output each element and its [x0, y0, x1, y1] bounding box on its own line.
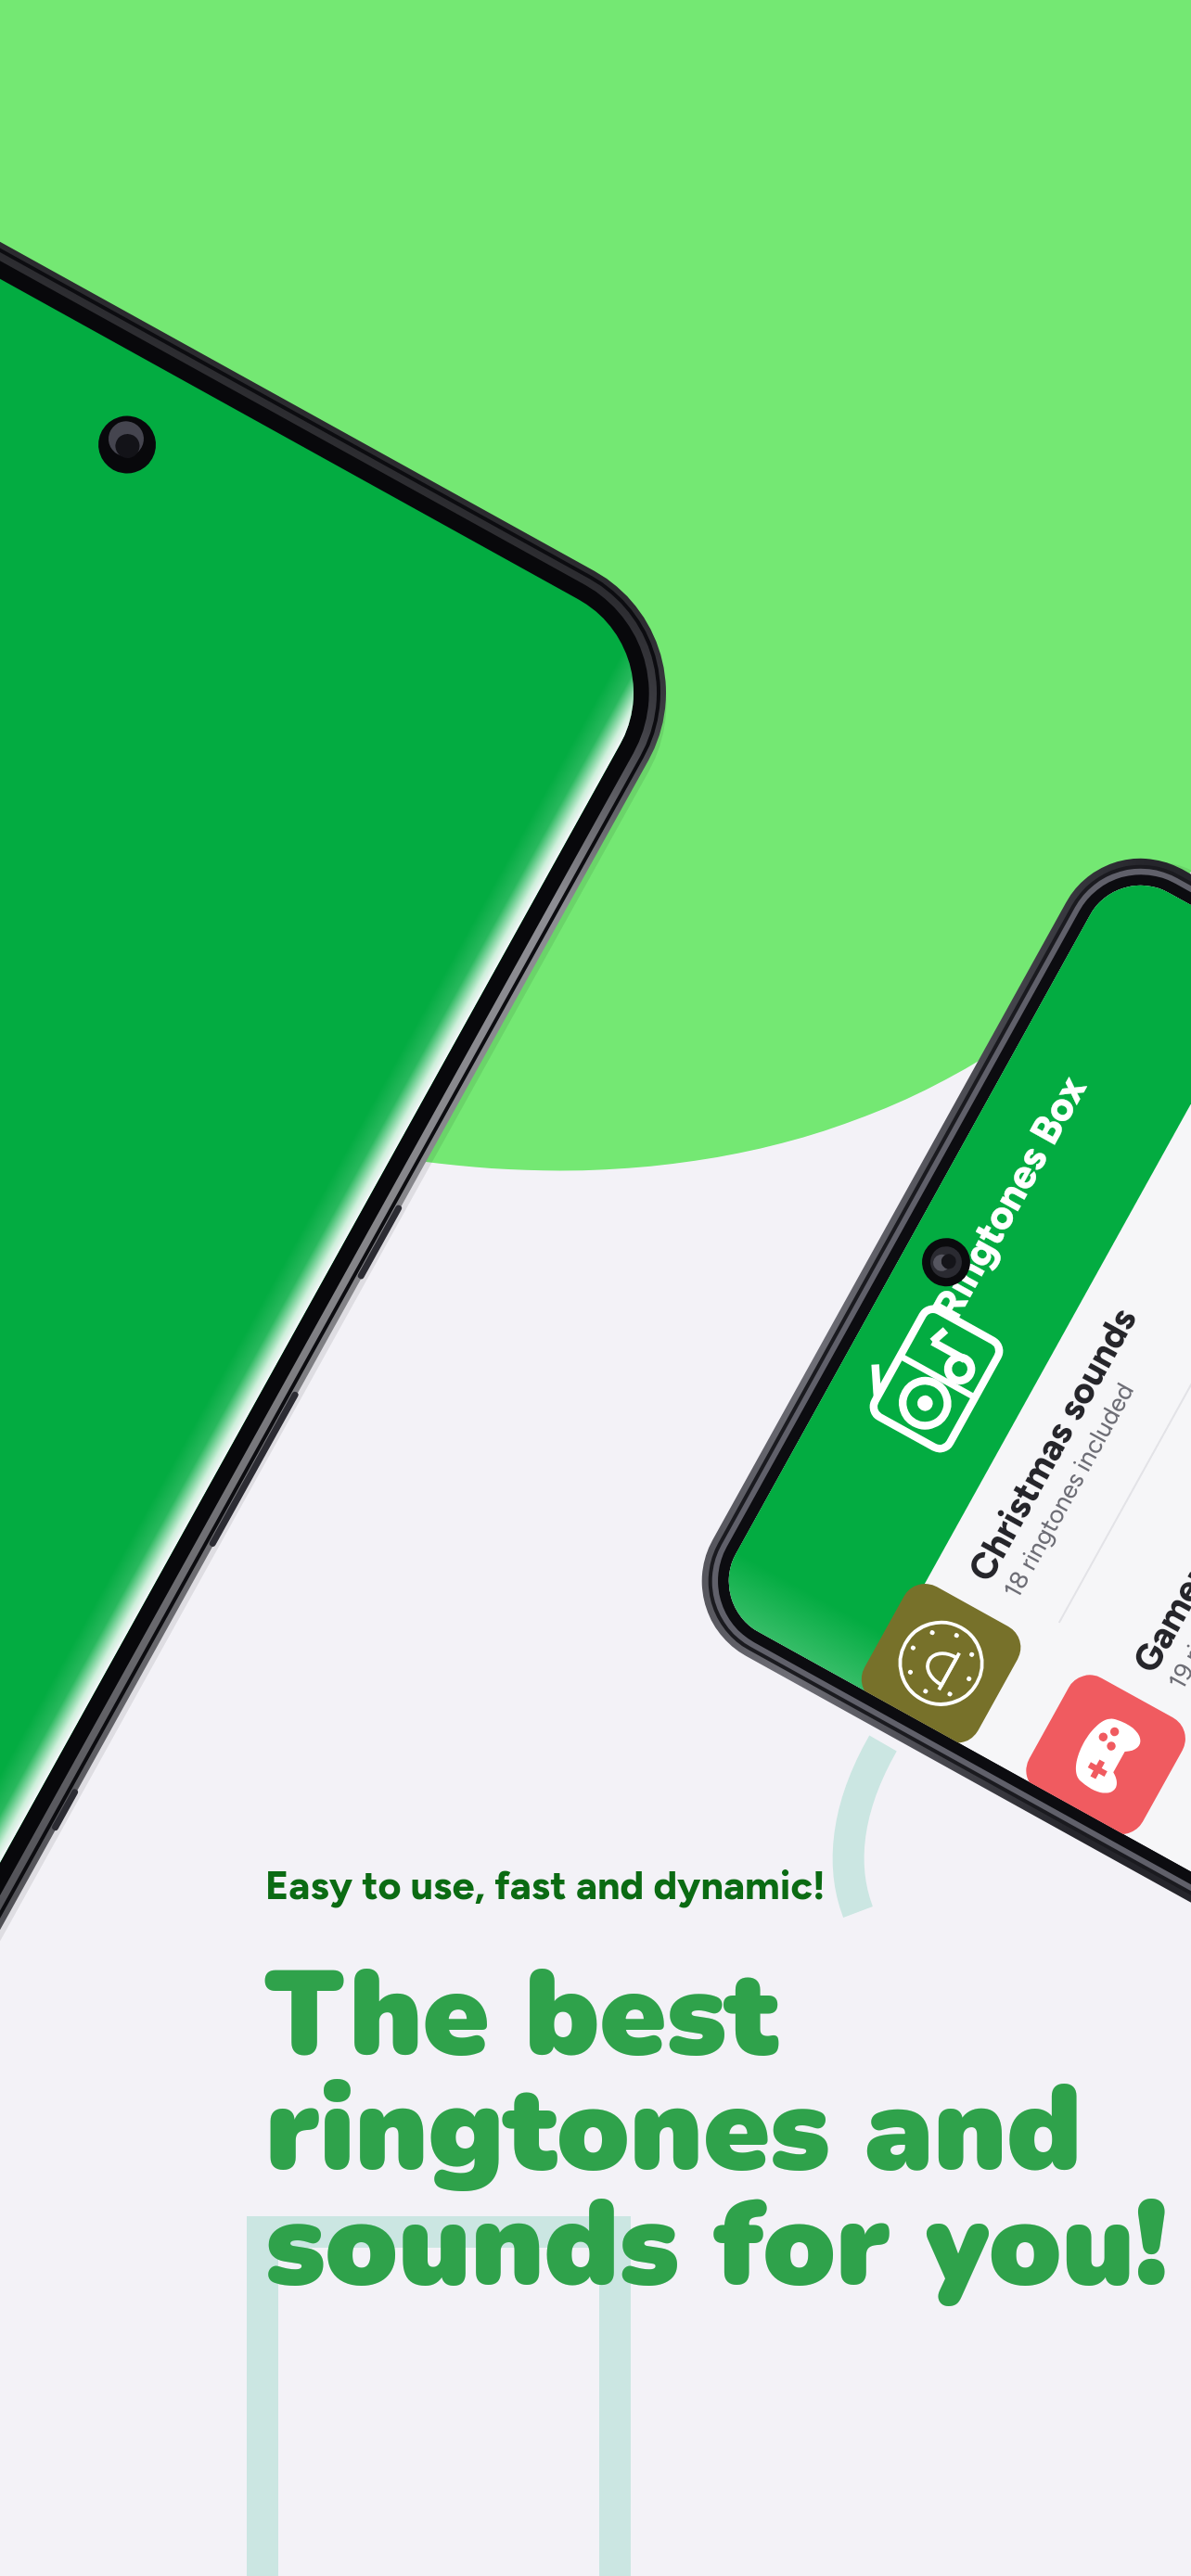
button[interactable] [0, 0, 1191, 2576]
